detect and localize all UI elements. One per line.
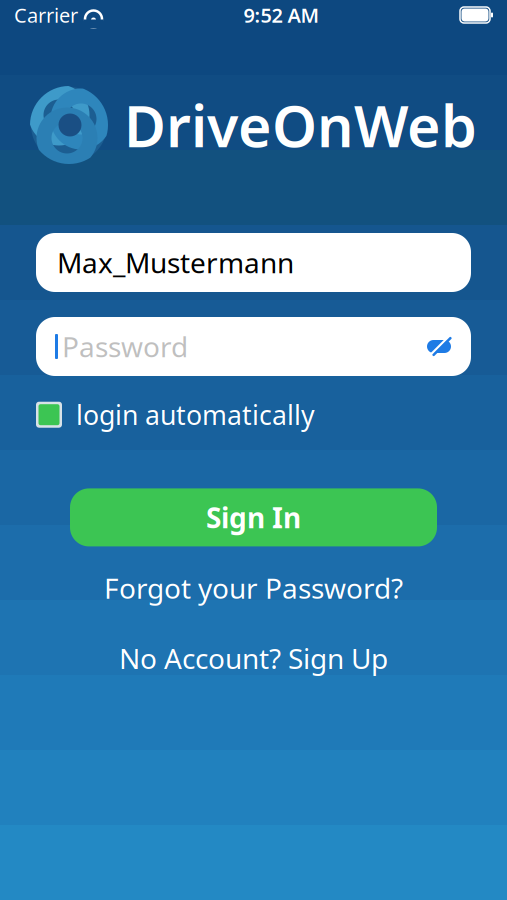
- staticText: Sign In: [206, 499, 301, 536]
- button[interactable]: Forgot your Password?: [92, 565, 415, 611]
- button[interactable]: No Account? Sign Up: [107, 636, 400, 681]
- staticText: Carrier: [14, 2, 78, 28]
- staticText: No Account? Sign Up: [119, 640, 388, 677]
- button[interactable]: Sign In: [70, 488, 437, 546]
- staticText: login automatically: [76, 397, 315, 432]
- staticText: 9:52 AM: [243, 2, 319, 28]
- staticText: Password: [62, 328, 188, 365]
- staticText: Forgot your Password?: [104, 569, 403, 607]
- button[interactable]: Password: [36, 317, 471, 376]
- button[interactable]: login automatically: [36, 397, 315, 432]
- staticText: DriveOnWeb: [124, 87, 477, 163]
- staticText: Max_Mustermann: [57, 244, 294, 281]
- button[interactable]: Max_Mustermann: [36, 233, 471, 292]
